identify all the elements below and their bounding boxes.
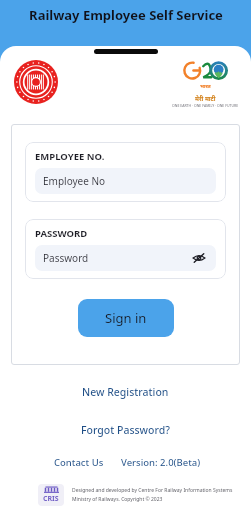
staticText: Sign in (105, 309, 147, 327)
button[interactable]: Show password (190, 249, 208, 267)
staticText: Version: 2.0(Beta) (121, 456, 201, 469)
staticText: Railway Employee Self Service (29, 6, 223, 24)
staticText: ONE EARTH · ONE FAMILY · ONE FUTURE (172, 103, 239, 108)
staticText: Password (43, 251, 89, 265)
staticText: CRIS (43, 494, 59, 504)
staticText: PASSWORD (35, 227, 88, 240)
staticText: Designed and developed by Centre For Rai… (72, 487, 233, 494)
staticText: EMPLOYEE NO. (35, 150, 105, 163)
button[interactable]: Contact Us (51, 453, 107, 472)
button[interactable]: New Registration (0, 381, 251, 403)
staticText: New Registration (82, 385, 169, 399)
staticText: मेरी माटी (195, 95, 216, 103)
staticText: Ministry of Railways. Copyright © 2023 (72, 496, 163, 503)
staticText: Employee No (43, 174, 106, 188)
staticText: Contact Us (54, 456, 104, 469)
staticText: Forgot Password? (81, 423, 170, 437)
button[interactable]: PASSWORD (25, 219, 226, 279)
staticText: भारत (200, 83, 211, 90)
button[interactable]: EMPLOYEE NO. (25, 142, 226, 202)
button[interactable]: Forgot Password? (0, 419, 251, 441)
button[interactable]: Sign in (78, 299, 174, 337)
